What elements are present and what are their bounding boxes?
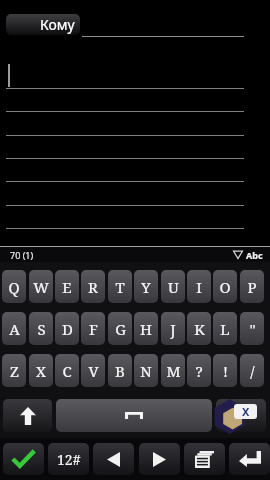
button[interactable]: F — [81, 312, 105, 345]
staticText: M — [166, 361, 181, 381]
staticText: L — [220, 319, 230, 339]
staticText: " — [249, 319, 256, 339]
staticText: 12# — [57, 450, 81, 469]
button[interactable]: Y — [134, 270, 158, 303]
button[interactable]: Accept — [3, 443, 44, 475]
button[interactable]: M — [161, 354, 185, 387]
staticText: Z — [10, 361, 19, 381]
button[interactable]: " — [240, 312, 264, 345]
staticText: O — [219, 277, 231, 297]
staticText: X — [242, 404, 250, 419]
button[interactable]: J — [161, 312, 185, 345]
button[interactable]: G — [108, 312, 132, 345]
button[interactable]: I — [187, 270, 211, 303]
button[interactable]: Q — [2, 270, 26, 303]
button[interactable]: X — [29, 354, 53, 387]
button[interactable]: T — [108, 270, 132, 303]
staticText: R — [88, 277, 98, 297]
staticText: P — [247, 277, 257, 297]
staticText: Кому — [40, 15, 75, 34]
button[interactable]: Move right — [139, 443, 180, 475]
staticText: W — [33, 277, 49, 297]
button[interactable]: E — [55, 270, 79, 303]
button[interactable]: P — [240, 270, 264, 303]
button[interactable]: C — [55, 354, 79, 387]
button[interactable]: O — [213, 270, 237, 303]
staticText: N — [140, 361, 152, 381]
button[interactable]: Z — [2, 354, 26, 387]
staticText: G — [115, 319, 126, 339]
staticText: Q — [8, 277, 20, 297]
staticText: A — [9, 319, 20, 339]
button[interactable]: D — [55, 312, 79, 345]
button[interactable]: ? — [187, 354, 211, 387]
staticText: ? — [195, 361, 203, 381]
button[interactable]: Кому — [6, 14, 80, 35]
staticText: Y — [141, 277, 151, 297]
staticText: T — [115, 277, 125, 297]
staticText: Abc — [246, 249, 263, 261]
button[interactable]: A — [2, 312, 26, 345]
button[interactable]: Space — [56, 399, 212, 432]
button[interactable]: Shift — [3, 399, 52, 432]
staticText: X — [36, 361, 46, 381]
staticText: U — [168, 277, 179, 297]
staticText: ! — [223, 361, 228, 381]
button[interactable]: V — [81, 354, 105, 387]
button[interactable]: L — [213, 312, 237, 345]
staticText: / — [250, 361, 255, 381]
staticText: H — [140, 319, 152, 339]
button[interactable]: Enter — [229, 443, 270, 475]
button[interactable]: R — [81, 270, 105, 303]
staticText: V — [88, 361, 99, 381]
button[interactable]: H — [134, 312, 158, 345]
button[interactable]: Numbers and symbols — [48, 443, 89, 475]
staticText: E — [62, 277, 72, 297]
button[interactable]: W — [29, 270, 53, 303]
staticText: 70 (1) — [10, 249, 34, 261]
staticText: D — [62, 319, 73, 339]
staticText: J — [170, 319, 176, 339]
staticText: K — [194, 319, 205, 339]
button[interactable]: B — [108, 354, 132, 387]
staticText: S — [37, 319, 46, 339]
button[interactable]: Options — [184, 443, 225, 475]
button[interactable]: Move left — [93, 443, 134, 475]
button[interactable]: U — [161, 270, 185, 303]
button[interactable]: N — [134, 354, 158, 387]
button[interactable]: S — [29, 312, 53, 345]
button[interactable]: Backspace — [216, 399, 266, 432]
staticText: C — [62, 361, 72, 381]
button[interactable]: K — [187, 312, 211, 345]
staticText: I — [196, 277, 202, 297]
button[interactable]: / — [240, 354, 264, 387]
button[interactable]: ! — [213, 354, 237, 387]
staticText: F — [89, 319, 98, 339]
staticText: B — [115, 361, 125, 381]
